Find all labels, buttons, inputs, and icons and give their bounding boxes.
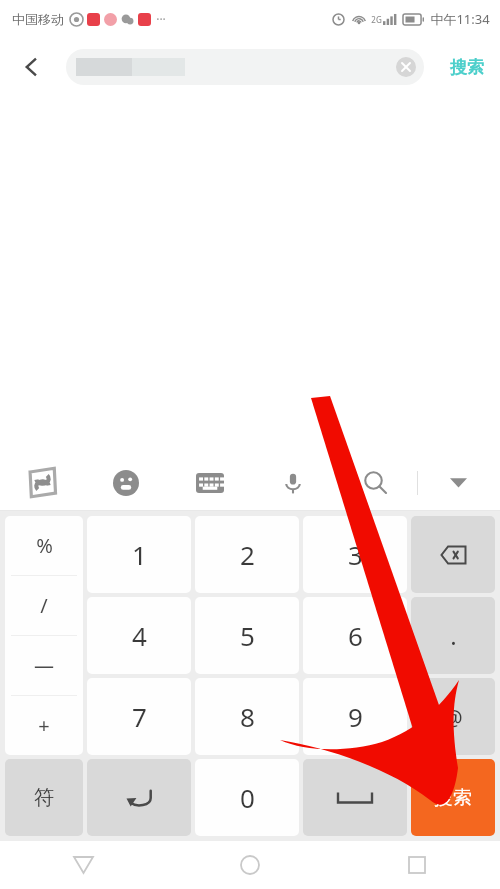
staticText: 7	[132, 699, 147, 734]
staticText: —	[34, 652, 54, 679]
staticText: .	[450, 619, 457, 652]
button[interactable]: /	[5, 576, 83, 635]
button[interactable]: 3	[303, 516, 407, 593]
button[interactable]: Search	[334, 454, 417, 511]
staticText: 符	[34, 785, 54, 810]
button[interactable]: Back	[0, 841, 166, 889]
button[interactable]: Return	[87, 759, 191, 836]
button[interactable]: Keyboard	[168, 454, 251, 511]
button[interactable]: Voice input	[251, 454, 334, 511]
staticText: 2	[240, 537, 255, 572]
button[interactable]: Backspace	[411, 516, 495, 593]
button[interactable]: Home	[166, 841, 333, 889]
staticText: 6	[348, 618, 363, 653]
button[interactable]: .	[411, 597, 495, 674]
button[interactable]: 搜索	[411, 759, 495, 836]
staticText: 2G	[371, 14, 382, 25]
button[interactable]: Sogou	[0, 454, 84, 511]
staticText: +	[38, 712, 50, 739]
staticText: 搜索	[450, 57, 484, 78]
button[interactable]: Clear	[66, 49, 424, 85]
staticText: 搜索	[434, 786, 472, 810]
button[interactable]: 6	[303, 597, 407, 674]
button[interactable]: 符	[5, 759, 83, 836]
button[interactable]: 0	[195, 759, 299, 836]
button[interactable]: Emoji	[84, 454, 168, 511]
button[interactable]: —	[5, 636, 83, 695]
button[interactable]: 7	[87, 678, 191, 755]
staticText: 1	[132, 537, 147, 572]
button[interactable]: 9	[303, 678, 407, 755]
button[interactable]: +	[5, 696, 83, 755]
staticText: 8	[240, 699, 255, 734]
button[interactable]: 4	[87, 597, 191, 674]
staticText: 3	[348, 537, 363, 572]
staticText: %	[36, 532, 53, 559]
button[interactable]: %	[5, 516, 83, 575]
staticText: ···	[156, 11, 166, 27]
staticText: 5	[240, 618, 255, 653]
staticText: 中国移动	[12, 11, 64, 27]
button[interactable]: 1	[87, 516, 191, 593]
button[interactable]: 5	[195, 597, 299, 674]
staticText: 4	[132, 618, 147, 653]
staticText: 中午11:34	[430, 10, 490, 28]
button[interactable]: @	[411, 678, 495, 755]
button[interactable]: 搜索	[442, 43, 492, 91]
button[interactable]: Recents	[333, 841, 500, 889]
button[interactable]: 2	[195, 516, 299, 593]
staticText: 0	[240, 780, 255, 815]
button[interactable]: 8	[195, 678, 299, 755]
button[interactable]: Hide keyboard	[417, 454, 500, 511]
button[interactable]: Clear	[396, 57, 416, 77]
staticText: @	[443, 702, 463, 732]
button[interactable]: Space	[303, 759, 407, 836]
staticText: /	[40, 592, 48, 619]
staticText: 9	[348, 699, 363, 734]
button[interactable]: Back	[8, 43, 56, 91]
